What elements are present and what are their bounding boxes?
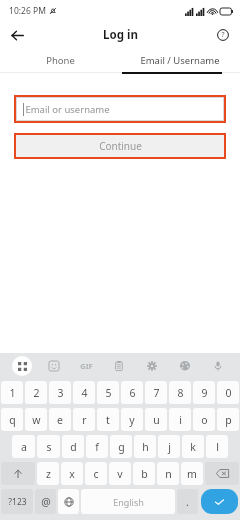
button[interactable]: n: [157, 462, 179, 485]
button[interactable]: a: [12, 435, 35, 458]
staticText: m: [187, 467, 197, 481]
button[interactable]: Help: [212, 24, 234, 46]
staticText: o: [201, 413, 208, 427]
button[interactable]: s: [37, 435, 60, 458]
button[interactable]: h: [134, 435, 156, 458]
button[interactable]: Change language: [58, 489, 79, 514]
button[interactable]: English: [81, 489, 175, 514]
button[interactable]: 9: [193, 381, 215, 404]
button[interactable]: 2: [25, 381, 47, 404]
button[interactable]: d: [62, 435, 84, 458]
staticText: 6: [129, 386, 136, 400]
button[interactable]: l: [206, 435, 228, 458]
staticText: p: [225, 413, 232, 427]
staticText: b: [141, 467, 148, 481]
staticText: Email or username: [25, 103, 110, 116]
button[interactable]: 5: [97, 381, 119, 404]
staticText: 4: [81, 386, 88, 400]
button[interactable]: 4: [73, 381, 95, 404]
button[interactable]: GIF: [70, 353, 102, 379]
button[interactable]: Email / Username: [120, 48, 240, 72]
staticText: e: [57, 413, 63, 427]
staticText: r: [82, 413, 87, 427]
button[interactable]: 0: [217, 381, 239, 404]
button[interactable]: 7: [145, 381, 167, 404]
staticText: y: [129, 413, 135, 427]
button[interactable]: Enter: [201, 489, 238, 514]
staticText: z: [46, 467, 51, 481]
staticText: Continue: [99, 139, 142, 153]
staticText: i: [179, 413, 182, 427]
button[interactable]: x: [61, 462, 83, 485]
staticText: q: [9, 413, 16, 427]
button[interactable]: Stickers: [38, 353, 70, 379]
button[interactable]: 1: [1, 381, 23, 404]
staticText: s: [46, 440, 52, 454]
button[interactable]: Theme: [168, 353, 201, 379]
staticText: c: [93, 467, 99, 481]
button[interactable]: .: [177, 489, 198, 514]
staticText: 10:26 PM: [9, 5, 46, 17]
button[interactable]: u: [145, 408, 167, 431]
button[interactable]: j: [158, 435, 180, 458]
button[interactable]: 3: [49, 381, 71, 404]
staticText: g: [118, 440, 125, 454]
staticText: ?123: [8, 496, 27, 508]
button[interactable]: f: [86, 435, 108, 458]
button[interactable]: g: [110, 435, 132, 458]
button[interactable]: o: [193, 408, 215, 431]
button[interactable]: Continue: [16, 135, 224, 157]
staticText: t: [106, 413, 110, 427]
staticText: ?: [221, 30, 225, 40]
button[interactable]: c: [85, 462, 107, 485]
button[interactable]: t: [97, 408, 119, 431]
staticText: n: [165, 467, 172, 481]
staticText: w: [32, 413, 41, 427]
button[interactable]: Shift: [1, 462, 35, 485]
staticText: u: [153, 413, 160, 427]
button[interactable]: Back: [6, 24, 28, 46]
staticText: Log in: [103, 27, 138, 43]
button[interactable]: Email or username: [16, 97, 224, 121]
button[interactable]: Clipboard: [102, 353, 135, 379]
button[interactable]: z: [37, 462, 59, 485]
button[interactable]: b: [133, 462, 155, 485]
button[interactable]: @: [35, 489, 56, 514]
button[interactable]: p: [217, 408, 239, 431]
button[interactable]: r: [73, 408, 95, 431]
button[interactable]: 6: [121, 381, 143, 404]
button[interactable]: v: [109, 462, 131, 485]
button[interactable]: Backspace: [205, 462, 239, 485]
staticText: x: [69, 467, 75, 481]
button[interactable]: 8: [169, 381, 191, 404]
button[interactable]: Phone: [0, 48, 120, 72]
button[interactable]: ?123: [1, 489, 33, 514]
staticText: 5: [105, 386, 112, 400]
staticText: k: [190, 440, 196, 454]
button[interactable]: e: [49, 408, 71, 431]
staticText: a: [21, 440, 27, 454]
button[interactable]: w: [25, 408, 47, 431]
button[interactable]: Apps: [6, 353, 38, 379]
staticText: 1: [9, 386, 16, 400]
button[interactable]: m: [181, 462, 203, 485]
button[interactable]: q: [1, 408, 23, 431]
button[interactable]: y: [121, 408, 143, 431]
button[interactable]: k: [182, 435, 204, 458]
staticText: f: [95, 440, 99, 454]
staticText: Email / Username: [140, 54, 220, 67]
staticText: l: [216, 440, 219, 454]
button[interactable]: Settings: [135, 353, 168, 379]
staticText: v: [117, 467, 123, 481]
button[interactable]: i: [169, 408, 191, 431]
staticText: 2: [33, 386, 40, 400]
staticText: .: [186, 495, 189, 509]
staticText: English: [113, 496, 144, 508]
staticText: h: [142, 440, 149, 454]
button[interactable]: Voice input: [201, 353, 234, 379]
staticText: 7: [153, 386, 160, 400]
staticText: d: [70, 440, 77, 454]
staticText: j: [168, 440, 171, 454]
staticText: 3: [57, 386, 64, 400]
staticText: 8: [177, 386, 184, 400]
